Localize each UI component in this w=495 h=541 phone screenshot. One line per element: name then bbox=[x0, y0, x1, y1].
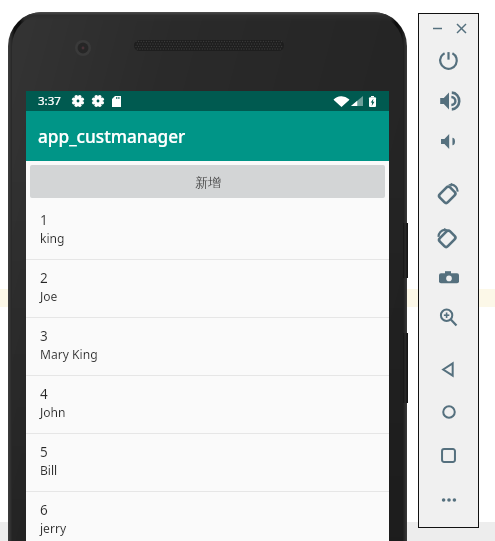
staticText: 6 bbox=[40, 501, 48, 519]
button[interactable]: Minimize bbox=[427, 19, 447, 37]
button[interactable]: Back bbox=[419, 350, 478, 388]
button[interactable]: Power bbox=[419, 41, 478, 79]
staticText: app_custmanager bbox=[38, 125, 186, 148]
button[interactable]: 3 bbox=[26, 318, 389, 376]
staticText: 新增 bbox=[195, 174, 221, 190]
staticText: jerry bbox=[40, 520, 67, 536]
button[interactable]: 5 bbox=[26, 434, 389, 492]
staticText: 2 bbox=[40, 269, 48, 287]
button[interactable]: Volume up bbox=[419, 82, 478, 120]
button[interactable]: Screenshot bbox=[419, 259, 478, 297]
staticText: Bill bbox=[40, 462, 58, 478]
staticText: 3:37 bbox=[38, 93, 61, 109]
staticText: 3 bbox=[40, 327, 48, 345]
staticText: 1 bbox=[40, 211, 48, 229]
staticText: John bbox=[40, 404, 66, 420]
staticText: Mary King bbox=[40, 346, 98, 362]
staticText: 5 bbox=[40, 443, 48, 461]
button[interactable]: 6 bbox=[26, 492, 389, 541]
button[interactable]: 2 bbox=[26, 260, 389, 318]
button[interactable]: Volume down bbox=[419, 122, 478, 160]
button[interactable]: Zoom in bbox=[419, 298, 478, 336]
button[interactable]: Overview bbox=[419, 436, 478, 474]
button[interactable]: Rotate left bbox=[419, 174, 478, 212]
button[interactable]: Home bbox=[419, 393, 478, 431]
button[interactable]: 4 bbox=[26, 376, 389, 434]
button[interactable]: Close bbox=[451, 19, 471, 37]
button[interactable]: 1 bbox=[26, 202, 389, 260]
staticText: king bbox=[40, 230, 65, 246]
button[interactable]: Rotate right bbox=[419, 218, 478, 256]
button[interactable]: 新增 bbox=[30, 165, 385, 198]
staticText: Joe bbox=[40, 288, 58, 304]
button[interactable]: More bbox=[419, 481, 478, 519]
staticText: 4 bbox=[40, 385, 48, 403]
